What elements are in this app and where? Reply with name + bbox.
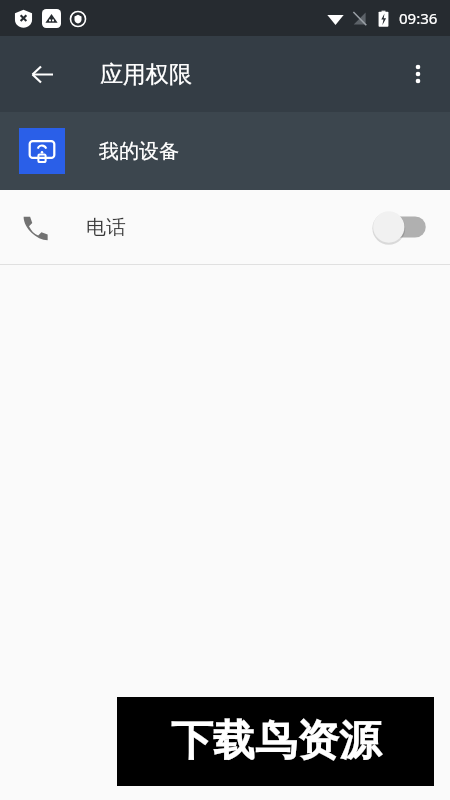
staticText: 我的设备 (99, 139, 179, 164)
button[interactable]: 电话 (0, 190, 450, 264)
button[interactable]: More options (394, 50, 442, 98)
button[interactable]: Phone permission toggle, off (372, 210, 428, 244)
button[interactable]: Back (18, 50, 66, 98)
staticText: 应用权限 (100, 60, 192, 89)
staticText: 09:36 (399, 8, 438, 28)
staticText: 电话 (86, 215, 126, 240)
button[interactable]: 我的设备 (0, 112, 450, 190)
staticText: 下载鸟资源 (171, 715, 381, 768)
